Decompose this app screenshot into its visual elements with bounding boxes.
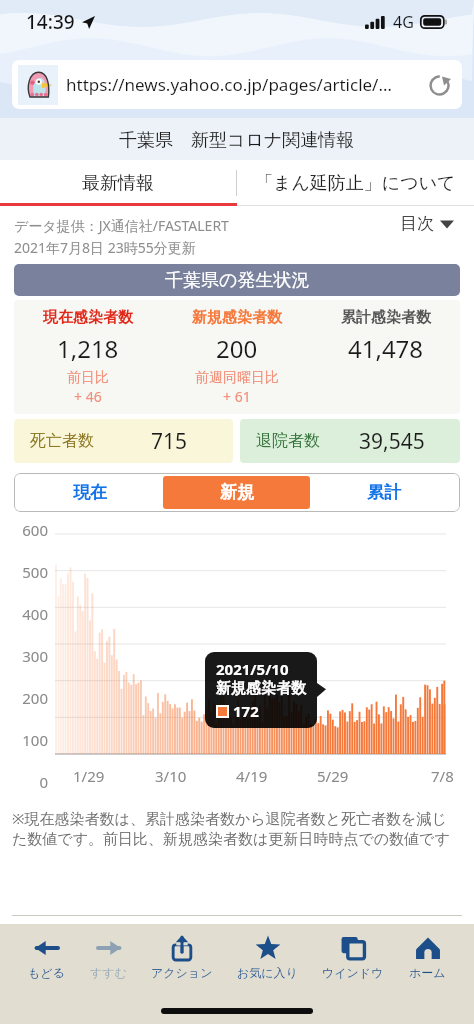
- staticText: 新規感染者数: [216, 679, 306, 698]
- button[interactable]: 「まん延防止」について: [237, 160, 474, 206]
- staticText: 500: [10, 562, 48, 582]
- staticText: 累計感染者数: [341, 308, 431, 327]
- staticText: 715: [151, 427, 188, 456]
- button[interactable]: 累計: [310, 476, 457, 509]
- button[interactable]: アクション: [149, 931, 215, 984]
- staticText: 41,478: [348, 332, 424, 365]
- staticText: 現在: [73, 482, 107, 503]
- staticText: ウインドウ: [322, 965, 384, 980]
- staticText: もどる: [28, 965, 65, 980]
- staticText: 2021年7月8日 23時55分更新: [14, 238, 196, 257]
- button[interactable]: すすむ: [88, 931, 129, 984]
- staticText: ※現在感染者数は、累計感染者数から退院者数と死亡者数を減じた数値です。前日比、新…: [12, 808, 462, 849]
- staticText: 累計: [367, 482, 401, 503]
- staticText: 新規感染者数: [192, 308, 282, 327]
- staticText: 最新情報: [82, 172, 154, 195]
- staticText: 3/10: [155, 766, 187, 786]
- staticText: 5/29: [317, 766, 349, 786]
- button[interactable]: 死亡者数: [14, 419, 233, 463]
- staticText: 前日比: [67, 369, 109, 387]
- staticText: 千葉県 新型コロナ関連情報: [119, 127, 355, 152]
- staticText: https://news.yahoo.co.jp/pages/article/…: [66, 73, 392, 96]
- button[interactable]: ホーム: [407, 931, 448, 984]
- staticText: 0: [10, 772, 48, 792]
- staticText: 前週同曜日比: [195, 369, 279, 387]
- staticText: アクション: [151, 965, 213, 980]
- staticText: 千葉県の発生状況: [165, 269, 310, 292]
- button[interactable]: 目次: [380, 206, 474, 240]
- staticText: 「まん延防止」について: [255, 172, 456, 195]
- staticText: 2021/5/10: [216, 659, 289, 679]
- button[interactable]: 退院者数: [240, 419, 460, 463]
- staticText: 14:39: [26, 9, 75, 35]
- staticText: 172: [233, 701, 259, 721]
- staticText: 新規: [220, 482, 254, 503]
- button[interactable]: Reload page: [422, 68, 456, 102]
- staticText: 200: [216, 332, 258, 365]
- staticText: 600: [10, 520, 48, 540]
- staticText: 7/8: [431, 766, 454, 786]
- staticText: 退院者数: [256, 431, 320, 451]
- staticText: 死亡者数: [30, 431, 94, 451]
- staticText: 4G: [393, 11, 414, 33]
- staticText: お気に入り: [237, 965, 298, 980]
- button[interactable]: もどる: [26, 931, 67, 984]
- button[interactable]: お気に入り: [235, 931, 300, 984]
- button[interactable]: 最新情報: [0, 160, 236, 206]
- button[interactable]: 新規: [163, 476, 310, 509]
- staticText: 200: [10, 688, 48, 708]
- staticText: 400: [10, 604, 48, 624]
- button[interactable]: https://news.yahoo.co.jp/pages/article/…: [12, 60, 462, 109]
- staticText: 100: [10, 730, 48, 750]
- staticText: データ提供：JX通信社/FASTALERT: [14, 216, 229, 235]
- staticText: ホーム: [409, 965, 446, 980]
- staticText: 300: [10, 646, 48, 666]
- staticText: 1,218: [57, 332, 119, 365]
- staticText: 4/19: [236, 766, 268, 786]
- staticText: すすむ: [90, 965, 127, 980]
- staticText: + 46: [74, 387, 102, 406]
- button[interactable]: 現在: [17, 476, 163, 509]
- button[interactable]: ウインドウ: [320, 931, 386, 984]
- staticText: 39,545: [359, 427, 425, 456]
- staticText: 1/29: [73, 766, 105, 786]
- staticText: + 61: [223, 387, 251, 406]
- staticText: 目次: [400, 213, 434, 234]
- staticText: 現在感染者数: [43, 308, 133, 327]
